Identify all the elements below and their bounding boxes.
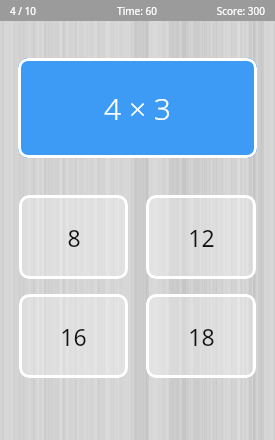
staticText: 4 × 3 — [104, 88, 171, 129]
staticText: Score: 300 — [185, 4, 265, 18]
staticText: 16 — [60, 321, 87, 352]
staticText: 12 — [188, 222, 215, 253]
staticText: Time: 60 — [89, 4, 185, 18]
button[interactable]: 8 — [19, 195, 128, 279]
button[interactable]: 16 — [19, 294, 128, 378]
button[interactable]: 12 — [146, 195, 256, 279]
staticText: 18 — [188, 321, 215, 352]
staticText: 4 / 10 — [10, 4, 89, 18]
button[interactable]: 4 × 3 — [18, 58, 257, 158]
staticText: 8 — [67, 222, 81, 253]
button[interactable]: 18 — [146, 294, 256, 378]
